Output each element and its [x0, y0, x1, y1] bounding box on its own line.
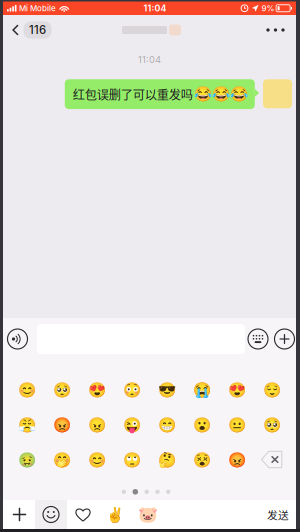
- staticText: 😮: [193, 416, 211, 433]
- staticText: 😠: [88, 416, 106, 433]
- staticText: 😍: [228, 381, 246, 398]
- staticText: 😳: [123, 381, 141, 398]
- button[interactable]: Keyboard: [245, 318, 271, 360]
- button[interactable]: Emoji: [80, 442, 115, 477]
- staticText: 🥺: [263, 416, 281, 433]
- button[interactable]: Emoji: [10, 407, 45, 442]
- staticText: 😭: [193, 381, 211, 398]
- button[interactable]: Emoji: [45, 372, 80, 407]
- button[interactable]: Emoji: [115, 442, 150, 477]
- button[interactable]: Emoji: [219, 442, 254, 477]
- button[interactable]: Emoji: [219, 407, 254, 442]
- staticText: 发送: [267, 507, 289, 522]
- staticText: 😤: [18, 416, 36, 433]
- staticText: 🤢: [18, 451, 36, 468]
- button[interactable]: Emoji: [35, 500, 67, 529]
- button[interactable]: Emoji: [80, 407, 115, 442]
- staticText: 😊: [18, 381, 36, 398]
- staticText: 😁: [158, 416, 176, 433]
- button[interactable]: Emoji: [150, 442, 184, 477]
- staticText: 116: [29, 23, 46, 37]
- button[interactable]: Voice message: [4, 318, 31, 360]
- button[interactable]: Emoji: [150, 372, 184, 407]
- button[interactable]: Emoji: [254, 372, 289, 407]
- button[interactable]: Bear sticker pack: [131, 500, 165, 529]
- button[interactable]: Emoji: [184, 372, 219, 407]
- staticText: 11:04: [138, 54, 161, 65]
- staticText: 🐷: [138, 505, 158, 524]
- button[interactable]: Emoji: [10, 372, 45, 407]
- staticText: 🤭: [53, 451, 71, 468]
- button[interactable]: Emoji: [80, 372, 115, 407]
- staticText: 😐: [228, 416, 246, 433]
- button[interactable]: More actions: [271, 318, 298, 360]
- staticText: 😌: [263, 381, 281, 398]
- staticText: 😊: [88, 451, 106, 468]
- button[interactable]: Delete: [254, 442, 289, 477]
- staticText: 😍: [88, 381, 106, 398]
- button[interactable]: Emoji: [115, 372, 150, 407]
- button[interactable]: Emoji: [115, 407, 150, 442]
- staticText: 😡: [228, 451, 246, 468]
- staticText: 😵: [193, 451, 211, 468]
- staticText: 😂😂😂: [194, 86, 248, 103]
- staticText: 😜: [123, 416, 141, 433]
- staticText: 😎: [158, 381, 176, 398]
- staticText: 🙄: [123, 451, 141, 468]
- button[interactable]: Emoji: [10, 442, 45, 477]
- button[interactable]: Emoji: [184, 442, 219, 477]
- button[interactable]: Emoji: [184, 407, 219, 442]
- button[interactable]: Emoji: [45, 442, 80, 477]
- staticText: 🥺: [53, 381, 71, 398]
- staticText: 🤔: [158, 451, 176, 468]
- staticText: 😡: [53, 416, 71, 433]
- button[interactable]: Emoji: [45, 407, 80, 442]
- button[interactable]: Favourite stickers: [67, 500, 99, 529]
- button[interactable]: More options: [255, 15, 296, 45]
- button[interactable]: Back, 116 unread: [3, 13, 51, 47]
- button[interactable]: Emoji: [150, 407, 184, 442]
- staticText: 9%: [262, 3, 275, 13]
- staticText: ✌: [106, 506, 124, 523]
- staticText: 11:04: [144, 3, 167, 13]
- button[interactable]: Sticker pack: [99, 500, 131, 529]
- button[interactable]: Add stickers: [4, 500, 35, 529]
- staticText: Mi Mobile: [19, 3, 56, 13]
- button[interactable]: Emoji: [254, 407, 289, 442]
- button[interactable]: 发送: [263, 500, 293, 529]
- staticText: 红包误删了可以重发吗: [73, 85, 193, 103]
- button[interactable]: Emoji: [219, 372, 254, 407]
